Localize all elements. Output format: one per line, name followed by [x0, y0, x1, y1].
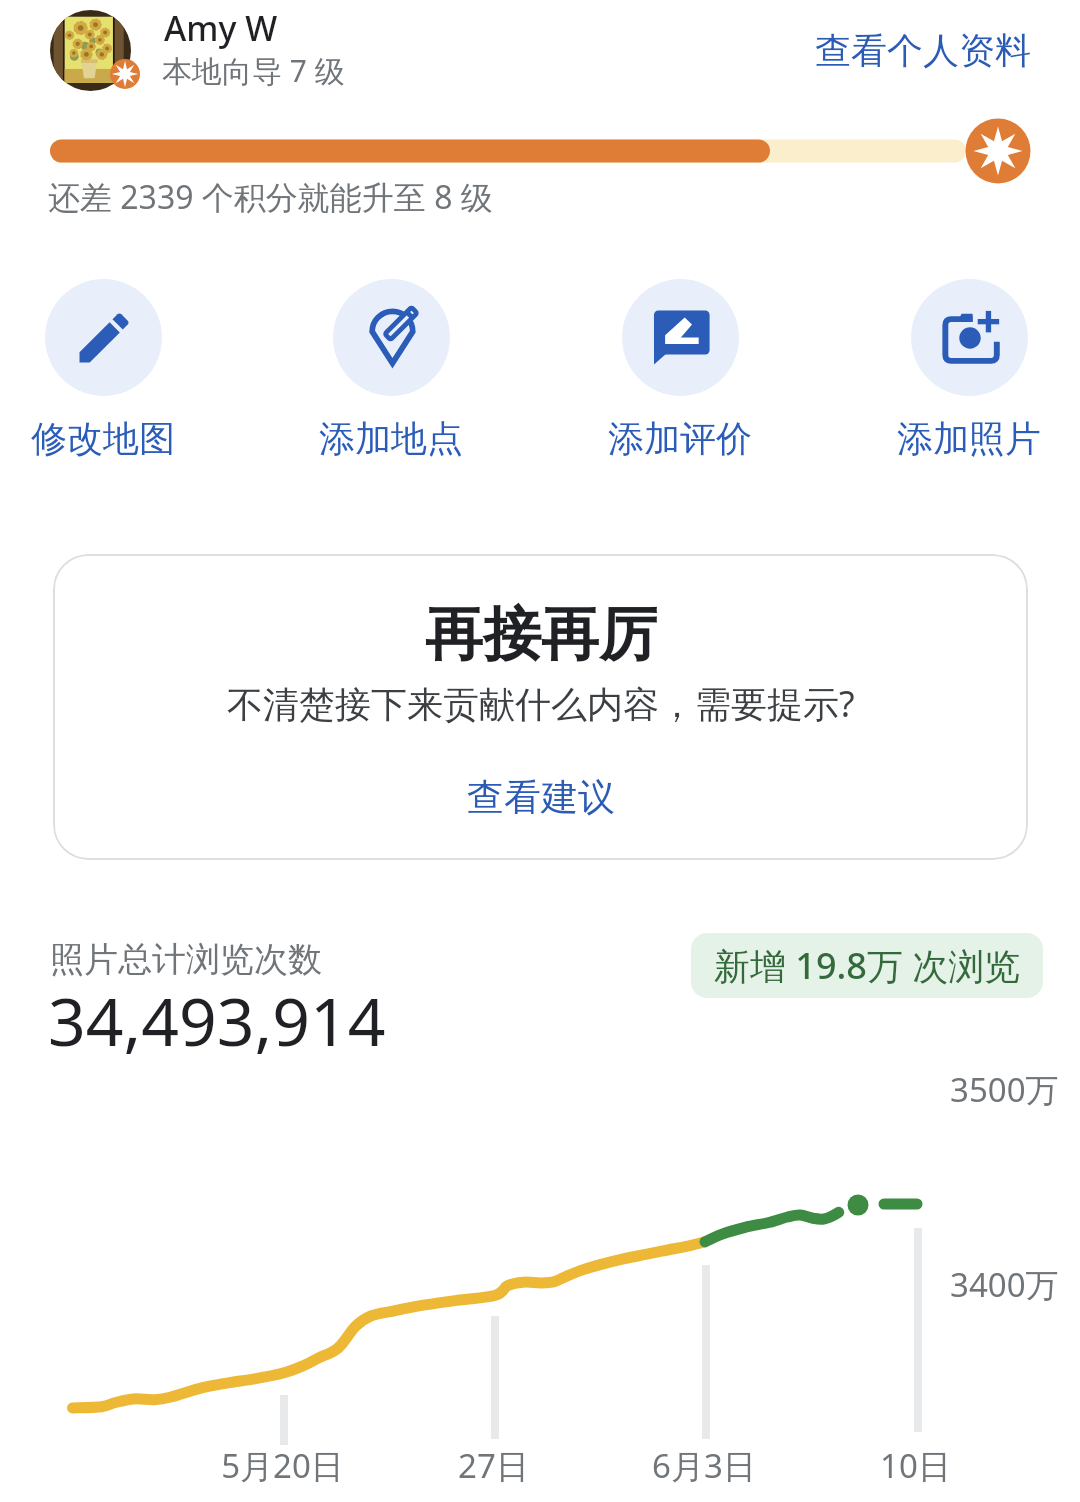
staticText: 再接再厉 — [425, 598, 657, 671]
staticText: 不清楚接下来贡献什么内容，需要提示? — [227, 679, 855, 728]
staticText: 修改地图 — [31, 416, 175, 461]
staticText: Amy W — [164, 5, 278, 51]
staticText: 添加地点 — [319, 416, 463, 461]
button[interactable]: Local Guide badge — [40, 0, 440, 104]
staticText: 10日 — [880, 1443, 951, 1488]
button[interactable]: Edit the map — [0, 279, 213, 461]
button[interactable]: 查看建议 — [447, 768, 635, 827]
button[interactable]: 再接再厉 — [53, 554, 1028, 860]
button[interactable]: Add a place — [281, 279, 501, 461]
other: Add a place — [333, 279, 450, 396]
button[interactable]: Add a review — [570, 279, 790, 461]
staticText: 添加评价 — [608, 416, 752, 461]
staticText: 还差 2339 个积分就能升至 8 级 — [48, 175, 493, 219]
other: Edit the map — [45, 279, 162, 396]
other: Add a review — [622, 279, 739, 396]
staticText: 27日 — [458, 1443, 529, 1488]
staticText: 6月3日 — [652, 1443, 756, 1488]
button[interactable]: 查看个人资料 — [801, 16, 1045, 85]
button[interactable]: 新增 19.8万 次浏览 — [691, 933, 1043, 998]
staticText: 本地向导 7 级 — [162, 50, 345, 91]
staticText: 3400万 — [950, 1262, 1059, 1307]
button[interactable]: Add photos — [859, 279, 1079, 461]
staticText: 5月20日 — [221, 1443, 344, 1488]
staticText: 添加照片 — [897, 416, 1041, 461]
other: Add photos — [911, 279, 1028, 396]
other: Local Guide badge — [110, 59, 140, 89]
staticText: 查看建议 — [467, 774, 615, 821]
staticText: 查看个人资料 — [815, 28, 1031, 73]
staticText: 34,493,914 — [48, 975, 386, 1065]
staticText: 3500万 — [950, 1067, 1059, 1112]
staticText: 照片总计浏览次数 — [50, 938, 322, 981]
staticText: 新增 19.8万 次浏览 — [714, 941, 1021, 990]
